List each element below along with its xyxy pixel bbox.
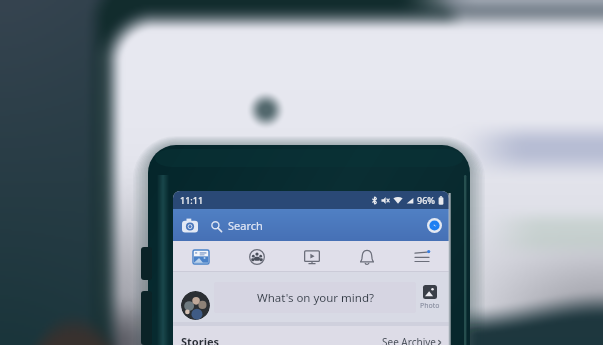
- button[interactable]: Messenger: [427, 218, 442, 233]
- button[interactable]: Camera: [173, 209, 449, 241]
- button[interactable]: Menu: [394, 241, 449, 272]
- staticText: Stories: [181, 334, 220, 345]
- staticText: Search: [228, 218, 263, 233]
- button[interactable]: Friends: [229, 241, 284, 272]
- button[interactable]: See Archive: [382, 335, 443, 345]
- button[interactable]: Camera: [182, 218, 198, 233]
- button[interactable]: Watch: [284, 241, 339, 272]
- button[interactable]: Profile picture: [181, 291, 210, 320]
- button[interactable]: What's on your mind?: [214, 282, 416, 313]
- staticText: What's on your mind?: [257, 290, 374, 306]
- staticText: Photo: [420, 301, 440, 311]
- staticText: See Archive: [382, 335, 436, 345]
- button[interactable]: Notifications: [339, 241, 394, 272]
- button[interactable]: Home: [173, 241, 229, 272]
- staticText: 11:11: [180, 194, 204, 206]
- staticText: 96%: [417, 194, 435, 206]
- button[interactable]: Photo: [420, 285, 440, 309]
